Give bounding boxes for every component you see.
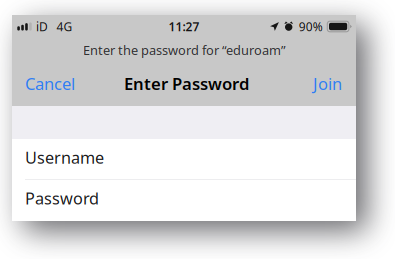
button[interactable]: Password: [12, 180, 356, 220]
staticText: Password: [25, 187, 99, 209]
button[interactable]: Cancel: [12, 64, 88, 106]
staticText: Username: [25, 146, 104, 169]
staticText: Enter Password: [124, 72, 249, 95]
staticText: Cancel: [25, 72, 75, 95]
staticText: 90%: [299, 18, 323, 34]
staticText: Join: [313, 72, 342, 95]
button[interactable]: Username: [12, 139, 356, 179]
staticText: Enter the password for “eduroam”: [83, 41, 286, 59]
staticText: 11:27: [168, 18, 199, 34]
staticText: iD: [36, 18, 48, 34]
button[interactable]: Join: [299, 64, 356, 106]
staticText: 4G: [56, 18, 72, 34]
